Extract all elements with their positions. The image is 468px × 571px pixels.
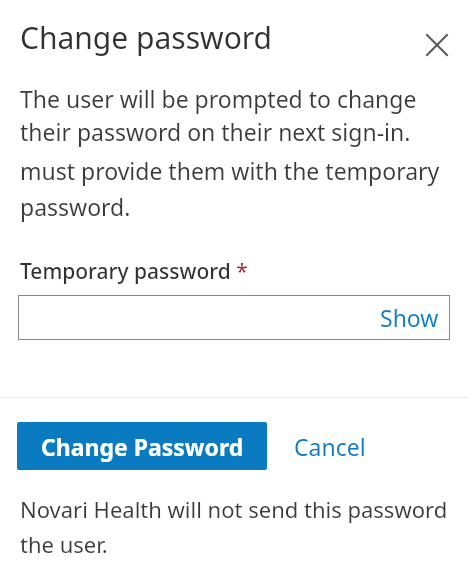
staticText: Cancel [294,431,366,462]
button[interactable]: Cancel [292,425,368,468]
button[interactable]: Close [414,22,460,68]
staticText: Temporary password * [20,257,248,286]
staticText: The user will be prompted to change [20,83,417,114]
staticText: Change Password [41,431,244,462]
staticText: the user. [20,529,108,559]
button[interactable]: Show [18,295,450,340]
staticText: Change password [20,17,273,58]
button[interactable]: Show [380,302,439,333]
staticText: their password on their next sign-in. Yo… [20,116,454,152]
staticText: password. [20,191,131,222]
staticText: must provide them with the temporary [20,155,440,186]
staticText: Novari Health will not send this passwor… [20,494,454,527]
staticText: Show [380,302,439,333]
button[interactable]: Change Password [17,422,267,470]
